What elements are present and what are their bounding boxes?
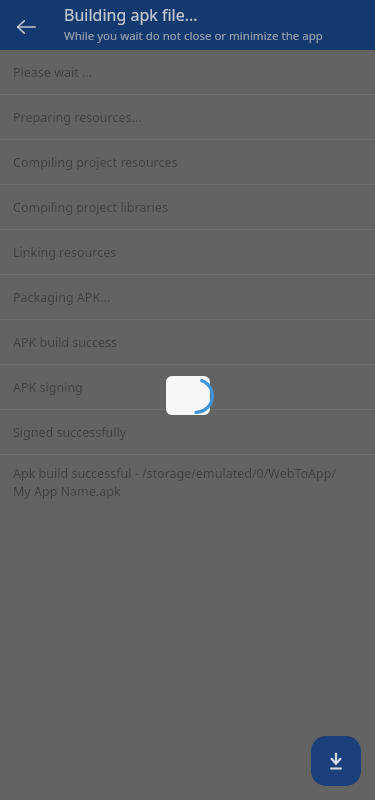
button[interactable]: Preparing resources... <box>0 95 375 139</box>
button[interactable]: Download APK <box>311 736 361 786</box>
staticText: Compiling project resources <box>13 154 178 171</box>
staticText: Building apk file... <box>64 4 198 26</box>
button[interactable]: Linking resources <box>0 230 375 274</box>
button[interactable]: APK signing <box>0 365 375 409</box>
staticText: APK build success <box>13 334 118 351</box>
staticText: Compiling project libraries <box>13 199 168 216</box>
button[interactable]: Packaging APK... <box>0 275 375 319</box>
staticText: Preparing resources... <box>13 109 142 126</box>
button[interactable]: Please wait ... <box>0 50 375 94</box>
staticText: APK signing <box>13 379 83 396</box>
staticText: Please wait ... <box>13 64 93 81</box>
button[interactable]: Apk build successful - /storage/emulated… <box>0 455 375 510</box>
staticText: Apk build successful - /storage/emulated… <box>13 465 345 500</box>
staticText: Packaging APK... <box>13 289 111 306</box>
button[interactable]: Compiling project resources <box>0 140 375 184</box>
staticText: Linking resources <box>13 244 117 261</box>
staticText: While you wait do not close or minimize … <box>64 28 323 44</box>
button[interactable]: Back <box>6 7 46 47</box>
button[interactable]: Compiling project libraries <box>0 185 375 229</box>
button[interactable]: Signed successfully <box>0 410 375 454</box>
button[interactable]: APK build success <box>0 320 375 364</box>
staticText: Signed successfully <box>13 424 127 441</box>
